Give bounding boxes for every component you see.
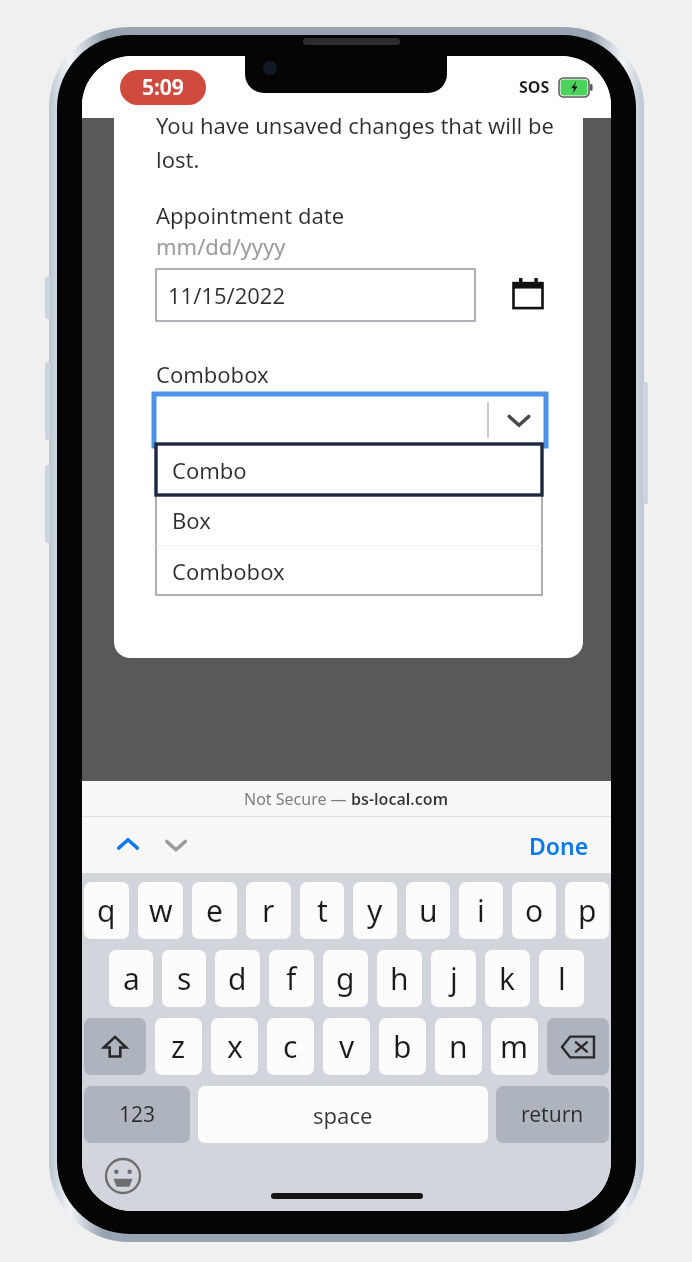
- staticText: i: [477, 890, 485, 931]
- button[interactable]: a: [109, 950, 153, 1007]
- button[interactable]: z: [155, 1018, 202, 1075]
- button[interactable]: v: [323, 1018, 370, 1075]
- button[interactable]: m: [491, 1018, 538, 1075]
- staticText: y: [367, 890, 383, 931]
- staticText: Done: [529, 830, 589, 861]
- button[interactable]: u: [406, 882, 450, 939]
- button[interactable]: Previous field: [104, 821, 152, 869]
- staticText: c: [283, 1026, 298, 1067]
- staticText: 11/15/2022: [168, 280, 286, 310]
- button[interactable]: space: [198, 1086, 488, 1143]
- staticText: j: [450, 958, 458, 999]
- button[interactable]: k: [485, 950, 530, 1007]
- staticText: h: [390, 958, 409, 999]
- button[interactable]: o: [512, 882, 556, 939]
- staticText: Combobox: [172, 556, 285, 586]
- staticText: bs-local.com: [351, 788, 449, 810]
- staticText: 5:09: [142, 73, 184, 102]
- button[interactable]: d: [215, 950, 260, 1007]
- button[interactable]: Emoji: [104, 1157, 142, 1195]
- staticText: p: [578, 890, 597, 931]
- button[interactable]: s: [162, 950, 206, 1007]
- staticText: q: [97, 890, 116, 931]
- button[interactable]: l: [539, 950, 584, 1007]
- staticText: You have unsaved changes that will be: [156, 118, 554, 140]
- button[interactable]: p: [565, 882, 609, 939]
- staticText: lost.: [156, 144, 200, 174]
- staticText: m: [500, 1026, 529, 1067]
- button[interactable]: b: [379, 1018, 426, 1075]
- staticText: return: [521, 1100, 584, 1129]
- button[interactable]: Box: [156, 495, 542, 545]
- button[interactable]: f: [269, 950, 314, 1007]
- button[interactable]: n: [435, 1018, 482, 1075]
- staticText: u: [419, 890, 438, 931]
- button[interactable]: e: [192, 882, 237, 939]
- staticText: r: [262, 890, 275, 931]
- staticText: g: [336, 958, 355, 999]
- button[interactable]: j: [431, 950, 476, 1007]
- button[interactable]: [154, 394, 546, 446]
- button[interactable]: return: [496, 1086, 609, 1143]
- staticText: 123: [119, 1100, 156, 1129]
- button[interactable]: c: [267, 1018, 314, 1075]
- staticText: e: [206, 890, 223, 931]
- button[interactable]: Show date picker: [512, 278, 544, 310]
- button[interactable]: x: [211, 1018, 258, 1075]
- staticText: w: [149, 890, 173, 931]
- button[interactable]: Done: [507, 820, 611, 871]
- button[interactable]: Shift: [84, 1018, 146, 1075]
- button[interactable]: 11/15/2022: [156, 269, 475, 321]
- button[interactable]: Next field: [152, 821, 200, 869]
- button[interactable]: Backspace: [547, 1018, 609, 1075]
- staticText: v: [339, 1026, 355, 1067]
- staticText: o: [525, 890, 544, 931]
- staticText: Combo: [172, 455, 247, 485]
- staticText: n: [449, 1026, 468, 1067]
- staticText: d: [228, 958, 247, 999]
- staticText: Box: [172, 505, 211, 535]
- button[interactable]: h: [377, 950, 422, 1007]
- button[interactable]: q: [84, 882, 129, 939]
- button[interactable]: g: [323, 950, 368, 1007]
- button[interactable]: i: [459, 882, 503, 939]
- staticText: f: [286, 958, 297, 999]
- staticText: t: [317, 890, 328, 931]
- button[interactable]: y: [353, 882, 397, 939]
- staticText: Not Secure —: [244, 788, 351, 810]
- button[interactable]: r: [246, 882, 291, 939]
- button[interactable]: t: [300, 882, 344, 939]
- staticText: l: [558, 958, 566, 999]
- button[interactable]: 123: [84, 1086, 190, 1143]
- staticText: a: [123, 958, 140, 999]
- staticText: Appointment date: [156, 200, 345, 230]
- staticText: space: [313, 1100, 373, 1130]
- staticText: k: [499, 958, 516, 999]
- button[interactable]: Combobox: [156, 546, 542, 595]
- staticText: s: [177, 958, 192, 999]
- staticText: b: [393, 1026, 412, 1067]
- staticText: mm/dd/yyyy: [156, 231, 286, 261]
- staticText: Combobox: [156, 359, 269, 389]
- staticText: x: [227, 1026, 243, 1067]
- staticText: z: [171, 1026, 186, 1067]
- button[interactable]: w: [138, 882, 183, 939]
- button[interactable]: Combo: [156, 444, 542, 495]
- staticText: SOS: [519, 76, 550, 98]
